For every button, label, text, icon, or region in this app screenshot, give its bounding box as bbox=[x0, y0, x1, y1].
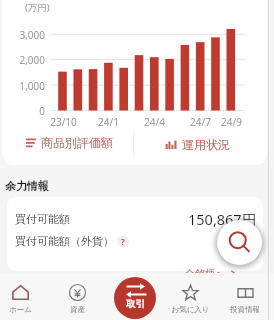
staticText: 1,000 bbox=[19, 79, 45, 93]
staticText: 取引 bbox=[126, 298, 145, 310]
staticText: お気に入り bbox=[171, 305, 210, 314]
staticText: 運用状況 bbox=[182, 137, 230, 152]
staticText: 24/7 bbox=[190, 115, 211, 129]
staticText: 24/4 bbox=[144, 115, 165, 129]
button[interactable]: ホーム bbox=[0, 273, 47, 320]
staticText: 3,000 bbox=[19, 28, 45, 42]
staticText: 0 bbox=[39, 104, 45, 118]
staticText: 24/9 bbox=[221, 115, 242, 129]
button[interactable]: 運用状況 bbox=[165, 130, 230, 158]
button[interactable]: 買付可能額 bbox=[15, 209, 257, 229]
staticText: ? bbox=[121, 236, 125, 247]
staticText: 投資情報 bbox=[230, 305, 260, 314]
staticText: 買付可能額 bbox=[15, 212, 70, 226]
button[interactable]: ヘルプ bbox=[117, 235, 129, 247]
staticText: 買付可能額（外貨） bbox=[15, 234, 114, 248]
staticText: ホーム bbox=[9, 305, 32, 314]
staticText: 2,000 bbox=[19, 53, 45, 67]
staticText: 23/10 bbox=[50, 115, 77, 129]
button[interactable]: 資産 bbox=[50, 273, 104, 320]
button[interactable]: 全銘柄へ bbox=[185, 267, 238, 280]
staticText: --.--円 bbox=[226, 233, 257, 249]
staticText: 資産 bbox=[70, 305, 85, 314]
staticText: (万円) bbox=[25, 1, 50, 14]
button[interactable]: 取引 bbox=[114, 277, 156, 319]
button[interactable]: 検索 bbox=[217, 220, 262, 265]
staticText: 150,867円 bbox=[188, 209, 257, 229]
button[interactable]: お気に入り bbox=[163, 273, 217, 320]
staticText: 24/1 bbox=[98, 115, 119, 129]
staticText: 商品別評価額 bbox=[41, 135, 113, 150]
button[interactable]: 商品別評価額 bbox=[26, 128, 113, 156]
staticText: 全銘柄へ bbox=[185, 267, 226, 280]
button[interactable]: 投資情報 bbox=[218, 273, 272, 320]
staticText: 余力情報 bbox=[5, 179, 49, 193]
button[interactable]: 買付可能額（外貨） bbox=[15, 231, 257, 251]
